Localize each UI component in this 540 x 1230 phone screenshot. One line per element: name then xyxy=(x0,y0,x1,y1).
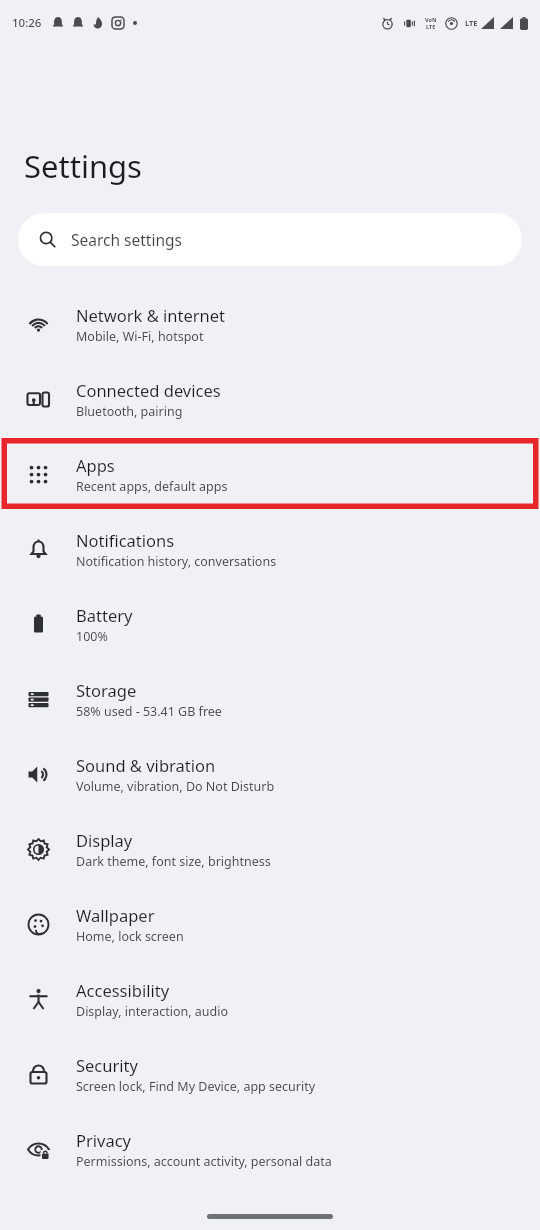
other: Security xyxy=(26,1062,51,1087)
staticText: 100% xyxy=(76,628,108,645)
button[interactable]: Accessibility xyxy=(0,962,540,1037)
staticText: Settings xyxy=(24,145,142,187)
staticText: Notifications xyxy=(76,529,175,551)
other: Search xyxy=(38,230,57,249)
other: Battery xyxy=(26,612,51,637)
staticText: Volume, vibration, Do Not Disturb xyxy=(76,778,275,795)
button[interactable]: Search xyxy=(18,213,522,266)
staticText: Wallpaper xyxy=(76,904,155,926)
staticText: Security xyxy=(76,1054,138,1076)
button[interactable]: Display xyxy=(0,812,540,887)
staticText: Accessibility xyxy=(76,979,170,1001)
staticText: Battery xyxy=(76,604,133,626)
staticText: Connected devices xyxy=(76,379,221,401)
button[interactable]: Storage xyxy=(0,662,540,737)
staticText: Screen lock, Find My Device, app securit… xyxy=(76,1078,316,1095)
other: Storage xyxy=(26,687,51,712)
staticText: Privacy xyxy=(76,1129,132,1151)
button[interactable]: Notifications xyxy=(0,512,540,587)
staticText: Bluetooth, pairing xyxy=(76,403,183,420)
button[interactable]: Sound and vibration xyxy=(0,737,540,812)
staticText: Display xyxy=(76,829,133,851)
button[interactable]: Security xyxy=(0,1037,540,1112)
staticText: Permissions, account activity, personal … xyxy=(76,1153,332,1170)
staticText: Dark theme, font size, brightness xyxy=(76,853,271,870)
other: Connected devices xyxy=(26,387,51,412)
button[interactable]: Network and internet xyxy=(0,287,540,362)
other: Network and internet xyxy=(26,312,51,337)
staticText: Display, interaction, audio xyxy=(76,1003,229,1020)
other: Wallpaper xyxy=(26,912,51,937)
other: Notifications xyxy=(26,537,51,562)
staticText: Notification history, conversations xyxy=(76,553,277,570)
button[interactable]: Battery xyxy=(0,587,540,662)
staticText: LTE xyxy=(426,23,436,30)
staticText: Sound & vibration xyxy=(76,754,216,776)
staticText: Network & internet xyxy=(76,304,226,326)
staticText: LTE xyxy=(465,18,478,28)
other: Accessibility xyxy=(26,987,51,1012)
staticText: VoN xyxy=(425,16,437,23)
other: Apps xyxy=(26,462,51,487)
staticText: Recent apps, default apps xyxy=(76,478,228,495)
button[interactable]: Apps xyxy=(0,437,540,512)
staticText: Mobile, Wi-Fi, hotspot xyxy=(76,328,204,345)
other: Sound and vibration xyxy=(26,762,51,787)
staticText: Apps xyxy=(76,454,115,476)
button[interactable]: Privacy xyxy=(0,1112,540,1187)
staticText: Storage xyxy=(76,679,137,701)
staticText: Search settings xyxy=(71,229,182,250)
button[interactable]: Connected devices xyxy=(0,362,540,437)
staticText: 58% used - 53.41 GB free xyxy=(76,703,222,720)
button[interactable]: Wallpaper xyxy=(0,887,540,962)
staticText: 10:26 xyxy=(12,15,42,31)
staticText: Home, lock screen xyxy=(76,928,184,945)
other: Display xyxy=(26,837,51,862)
other: Privacy xyxy=(26,1137,51,1162)
